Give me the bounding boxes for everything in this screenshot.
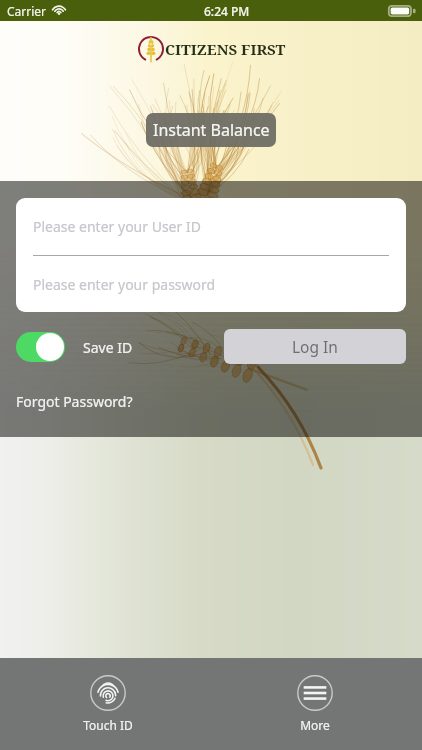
button[interactable]: Please enter your password — [16, 256, 406, 312]
button[interactable]: Please enter your User ID — [16, 198, 406, 255]
staticText: CITIZENS FIRST — [165, 39, 286, 59]
staticText: More — [300, 717, 330, 733]
other: Touch ID — [90, 675, 126, 711]
button[interactable]: Log In — [224, 329, 406, 364]
button[interactable]: More — [277, 675, 353, 733]
staticText: Please enter your User ID — [33, 217, 201, 236]
staticText: Please enter your password — [33, 275, 216, 294]
staticText: Log In — [292, 336, 338, 357]
staticText: Save ID — [83, 338, 133, 357]
button[interactable]: Touch ID — [63, 675, 153, 733]
button[interactable]: Save ID — [16, 332, 133, 362]
other: More — [297, 675, 333, 711]
staticText: Carrier — [7, 3, 47, 19]
staticText: Touch ID — [83, 717, 133, 733]
staticText: Instant Balance — [153, 119, 270, 141]
staticText: 6:24 PM — [204, 3, 250, 19]
button[interactable]: Forgot Password? — [16, 392, 133, 411]
button[interactable]: Instant Balance — [146, 113, 276, 147]
staticText: Forgot Password? — [16, 392, 133, 411]
